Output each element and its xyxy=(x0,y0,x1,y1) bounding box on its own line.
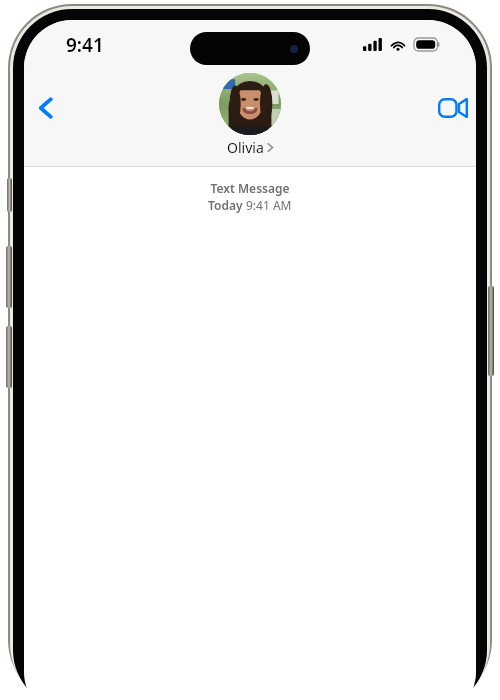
staticText: Today xyxy=(208,197,246,213)
staticText: 9:41 AM xyxy=(246,197,292,213)
button[interactable]: Olivia xyxy=(219,73,281,157)
button[interactable]: Back xyxy=(24,86,68,130)
staticText: 9:41 xyxy=(66,32,104,58)
button[interactable]: FaceTime video call xyxy=(430,85,476,131)
staticText: Text Message xyxy=(210,180,290,196)
staticText: Olivia xyxy=(227,138,264,157)
